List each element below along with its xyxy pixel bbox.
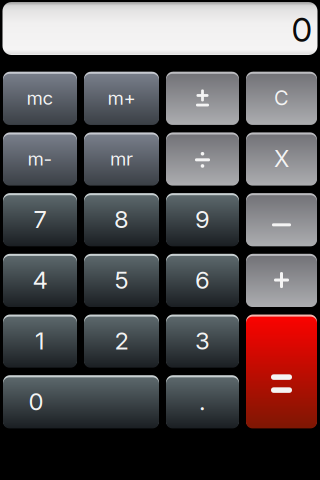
button[interactable]: 0 xyxy=(3,375,159,428)
button[interactable]: Divide xyxy=(166,132,239,185)
button[interactable]: 5 xyxy=(84,254,159,306)
staticText: m+ xyxy=(107,87,135,109)
button[interactable]: Equals xyxy=(246,314,317,428)
staticText: mr xyxy=(110,147,133,170)
staticText: m- xyxy=(27,147,52,170)
button[interactable]: Minus xyxy=(246,193,317,246)
staticText: 7 xyxy=(33,205,46,234)
staticText: 2 xyxy=(114,326,128,355)
staticText: 9 xyxy=(195,205,210,234)
button[interactable]: 8 xyxy=(84,193,159,246)
staticText: 1 xyxy=(35,326,45,355)
staticText: 4 xyxy=(32,265,47,294)
staticText: X xyxy=(274,145,289,172)
staticText: 5 xyxy=(114,265,128,294)
button[interactable]: 2 xyxy=(84,314,159,367)
staticText: 6 xyxy=(195,265,210,294)
button[interactable]: 9 xyxy=(166,193,239,246)
button[interactable]: . xyxy=(166,375,239,428)
button[interactable]: Multiply xyxy=(246,132,317,185)
staticText: mc xyxy=(26,87,53,109)
staticText: 0 xyxy=(291,9,312,50)
button[interactable]: 4 xyxy=(3,254,77,306)
staticText: 3 xyxy=(195,326,210,355)
button[interactable]: 7 xyxy=(3,193,77,246)
staticText: C xyxy=(274,86,289,110)
button[interactable]: 6 xyxy=(166,254,239,306)
staticText: . xyxy=(199,387,206,416)
button[interactable]: 3 xyxy=(166,314,239,367)
staticText: 0 xyxy=(28,387,43,416)
button[interactable]: m- xyxy=(3,132,77,185)
button[interactable]: Plus xyxy=(246,254,317,306)
button[interactable]: mc xyxy=(3,72,77,124)
button[interactable]: Plus minus xyxy=(166,72,239,124)
button[interactable]: mr xyxy=(84,132,159,185)
staticText: 8 xyxy=(114,205,129,234)
button[interactable]: C xyxy=(246,72,317,124)
button[interactable]: m+ xyxy=(84,72,159,124)
button[interactable]: 1 xyxy=(3,314,77,367)
